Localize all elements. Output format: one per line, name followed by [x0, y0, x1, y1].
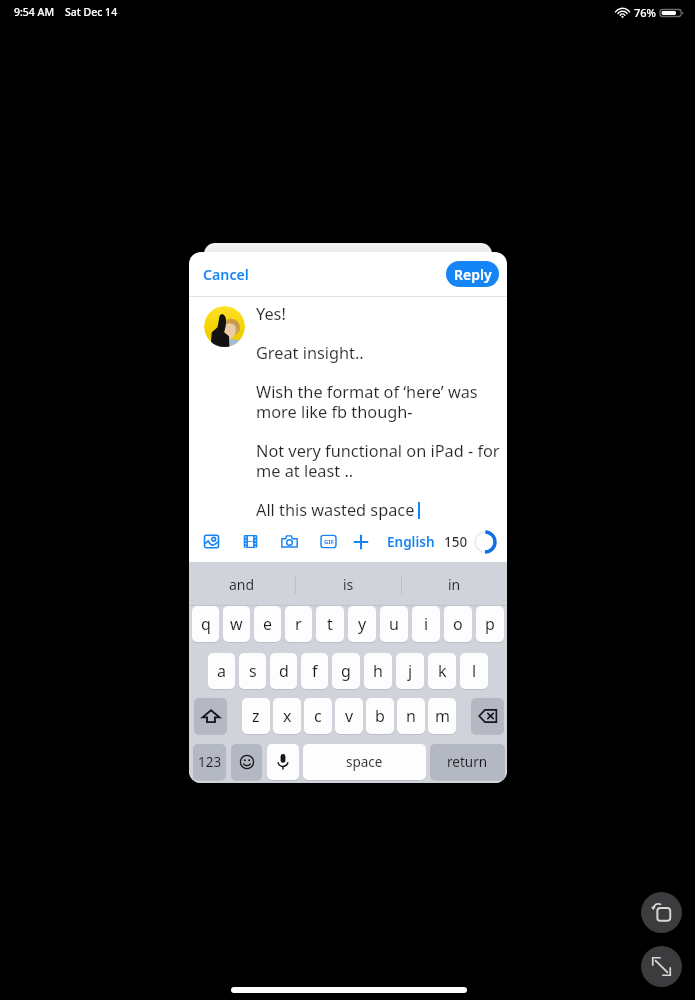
button[interactable]: Rotate — [641, 892, 682, 933]
staticText: d — [279, 660, 289, 682]
button[interactable]: Emoji — [231, 744, 262, 780]
staticText: All this wasted space — [256, 499, 415, 521]
button[interactable]: Backspace — [471, 698, 504, 734]
staticText: o — [453, 613, 463, 635]
staticText: Yes! — [256, 303, 286, 325]
button[interactable]: m — [428, 698, 456, 734]
staticText: a — [217, 660, 226, 682]
button[interactable]: Reply — [446, 261, 499, 287]
staticText: Not very functional on iPad - for me at … — [256, 440, 505, 482]
staticText: 123 — [198, 753, 222, 771]
staticText: s — [249, 660, 257, 682]
button[interactable]: k — [428, 653, 456, 689]
button[interactable]: and — [189, 562, 295, 606]
staticText: 76% — [634, 5, 656, 20]
button[interactable]: is — [296, 562, 401, 606]
button[interactable]: b — [366, 698, 394, 734]
button[interactable]: u — [380, 606, 408, 642]
button[interactable]: Photo — [203, 533, 220, 550]
staticText: v — [345, 705, 354, 727]
button[interactable]: in — [402, 562, 507, 606]
button[interactable]: Add — [352, 533, 370, 551]
staticText: space — [346, 753, 383, 771]
button[interactable]: n — [397, 698, 425, 734]
button[interactable]: q — [192, 606, 219, 642]
button[interactable]: Video — [242, 533, 259, 550]
button[interactable]: h — [364, 653, 392, 689]
staticText: i — [424, 613, 429, 635]
button[interactable]: English — [387, 533, 435, 551]
button[interactable]: space — [303, 744, 426, 780]
button[interactable]: Dictate — [267, 744, 299, 780]
staticText: k — [438, 660, 447, 682]
staticText: h — [373, 660, 383, 682]
staticText: q — [201, 613, 211, 635]
button[interactable]: d — [270, 653, 297, 689]
staticText: English — [387, 533, 435, 551]
staticText: p — [485, 613, 495, 635]
staticText: Reply — [454, 265, 492, 284]
staticText: y — [358, 613, 367, 635]
staticText: in — [448, 575, 461, 594]
staticText: e — [263, 613, 273, 635]
button[interactable]: l — [460, 653, 488, 689]
staticText: l — [472, 660, 477, 682]
button[interactable]: p — [476, 606, 504, 642]
button[interactable]: GIF — [320, 533, 337, 550]
staticText: GIF — [324, 538, 334, 546]
button[interactable]: o — [444, 606, 472, 642]
button[interactable]: Camera — [281, 533, 298, 550]
button[interactable]: z — [242, 698, 270, 734]
button[interactable]: t — [316, 606, 344, 642]
button[interactable]: f — [301, 653, 328, 689]
staticText: m — [435, 705, 450, 727]
staticText: j — [408, 660, 413, 682]
staticText: Sat Dec 14 — [65, 5, 118, 19]
button[interactable]: i — [412, 606, 440, 642]
staticText: and — [229, 575, 255, 594]
button[interactable]: w — [223, 606, 250, 642]
button[interactable]: s — [239, 653, 266, 689]
staticText: is — [343, 575, 354, 594]
staticText: w — [230, 613, 243, 635]
staticText: x — [283, 705, 292, 727]
staticText: c — [314, 705, 322, 727]
staticText: u — [389, 613, 399, 635]
staticText: 9:54 AM — [14, 5, 55, 19]
staticText: 150 — [444, 533, 468, 551]
staticText: Wish the format of ‘here’ was more like … — [256, 381, 505, 423]
button[interactable]: Shift — [194, 698, 227, 734]
button[interactable]: y — [348, 606, 376, 642]
staticText: z — [252, 705, 260, 727]
button[interactable]: a — [208, 653, 235, 689]
button[interactable]: r — [285, 606, 312, 642]
button[interactable]: x — [273, 698, 301, 734]
button[interactable]: 123 — [193, 744, 226, 780]
staticText: Cancel — [203, 265, 249, 284]
staticText: b — [375, 705, 385, 727]
staticText: n — [406, 705, 416, 727]
button[interactable]: return — [430, 744, 505, 780]
staticText: g — [341, 660, 351, 682]
button[interactable]: e — [254, 606, 281, 642]
button[interactable]: c — [304, 698, 332, 734]
button[interactable]: g — [332, 653, 360, 689]
button[interactable]: Cancel — [199, 261, 253, 288]
button[interactable]: Resize — [641, 946, 682, 987]
button[interactable]: v — [335, 698, 363, 734]
staticText: r — [295, 613, 302, 635]
staticText: f — [312, 660, 318, 682]
button[interactable]: j — [396, 653, 424, 689]
staticText: t — [327, 613, 333, 635]
staticText: return — [447, 753, 488, 771]
staticText: Great insight.. — [256, 342, 364, 364]
